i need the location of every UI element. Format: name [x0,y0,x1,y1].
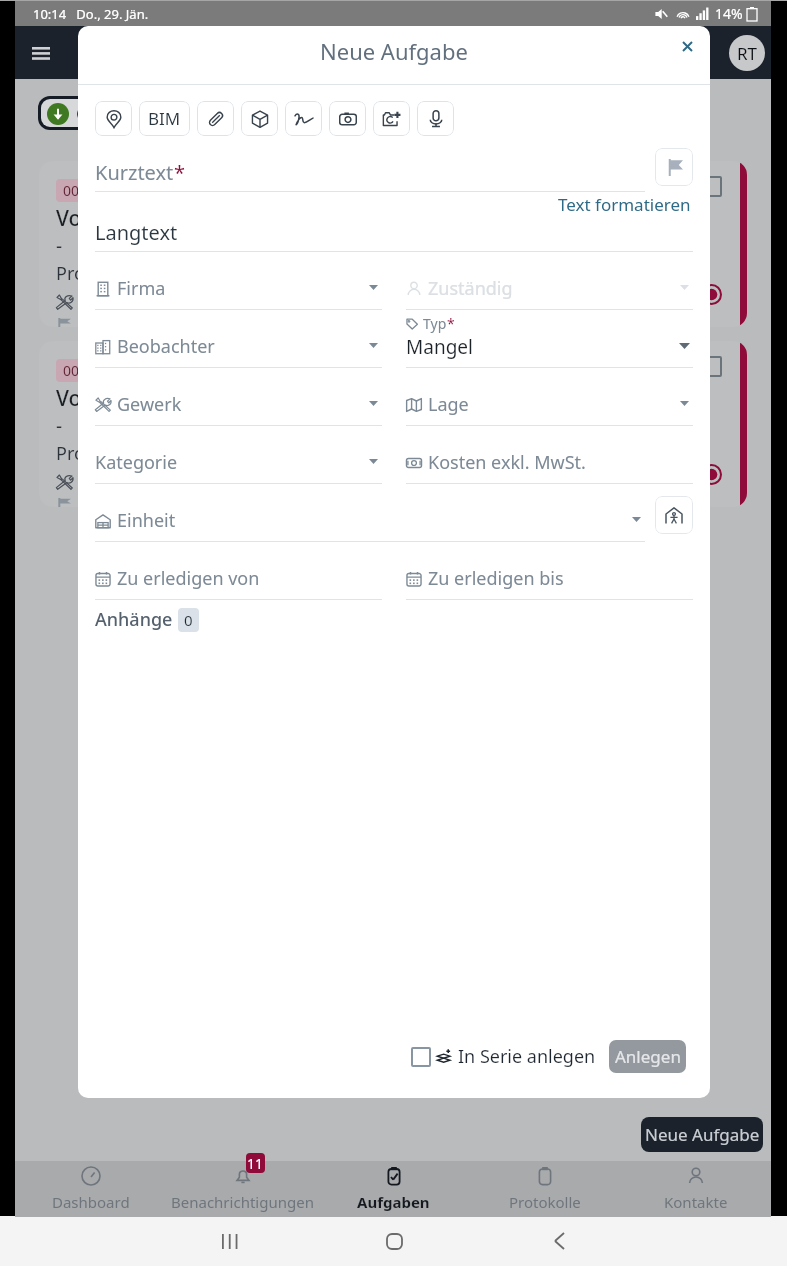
button[interactable]: RT [729,35,765,71]
staticText: Neue Aufgabe [645,1123,760,1146]
staticText: - [56,413,63,439]
staticText: Protokolle [509,1192,581,1212]
button[interactable]: Attach [197,101,234,136]
staticText: Typ [423,314,447,333]
staticText: Einheit [117,508,176,533]
staticText: Neue Aufgabe [320,36,468,66]
staticText: 11 [247,1154,264,1173]
staticText: Lage [428,392,469,417]
button[interactable]: Flag [655,148,693,186]
staticText: Dashboard [52,1192,130,1212]
button[interactable]: In Serie anlegen [411,1038,596,1075]
button[interactable]: Typ [406,310,693,368]
staticText: BIM [148,107,181,130]
staticText: - [56,233,63,259]
button[interactable]: Home [369,1216,419,1266]
button[interactable]: Close [671,30,704,63]
staticText: Vorbereitung Kickoff [56,384,264,413]
staticText: Beobachter [117,334,215,359]
staticText: - Elektro [80,291,146,314]
staticText: Projekt Nord [56,441,164,466]
button[interactable]: 3D model [241,101,278,136]
staticText: RT [737,42,758,65]
staticText: Aufgaben [357,1192,430,1212]
staticText: Vorbereitung Kickoff [56,204,264,233]
button[interactable]: Kosten exkl. MwSt. [406,426,693,484]
staticText: Text formatieren [558,193,691,216]
button[interactable]: Recents [204,1216,254,1266]
staticText: 0 [184,610,193,630]
staticText: - Elektro [80,471,146,494]
button[interactable]: Dashboard [15,1161,167,1217]
button[interactable]: Kontakte [620,1161,771,1217]
staticText: Zu erledigen von [117,566,260,591]
staticText: Mangel [406,334,473,360]
staticText: In Serie anlegen [458,1044,596,1069]
button[interactable]: Kategorie [95,426,382,484]
button[interactable]: Back [534,1216,584,1266]
staticText: Gewerk [117,392,182,417]
button[interactable]: Protokolle [469,1161,620,1217]
staticText: Benachrichtigungen [171,1192,314,1212]
button[interactable]: Camera [329,101,366,136]
staticText: * [447,314,455,333]
button[interactable]: Neue Aufgabe [641,1117,763,1152]
staticText: Kosten exkl. MwSt. [428,450,586,475]
button[interactable]: 11 [167,1161,318,1217]
button[interactable]: Menu [19,31,63,75]
staticText: Anhänge [95,607,173,632]
button[interactable]: Text formatieren [556,192,693,217]
button[interactable]: Beobachter [95,310,382,368]
staticText: 0014 [63,361,96,380]
button[interactable]: Firma [95,252,382,310]
staticText: * [174,159,186,186]
staticText: Kurztext [95,159,174,186]
staticText: Anlegen [615,1045,681,1068]
button[interactable]: Offen [41,99,335,127]
button[interactable]: Gewerk [95,368,382,426]
button[interactable]: Zu erledigen bis [406,542,693,600]
button[interactable]: 0015 [39,161,747,327]
staticText: Firma [117,276,166,301]
staticText: Offen [76,102,122,125]
staticText: 10:14 Do., 29. Jän. [33,5,149,23]
button[interactable]: Add photo [373,101,410,136]
button[interactable]: Voice [417,101,454,136]
button[interactable]: Signature [285,101,322,136]
button[interactable]: Location [95,101,132,136]
staticText: Projekt Nord [56,261,164,286]
staticText: Zuständig [428,276,513,301]
button[interactable]: Anlegen [609,1040,686,1073]
button[interactable]: Select unit [655,496,693,534]
staticText: Zu erledigen bis [428,566,564,591]
button[interactable]: Zu erledigen von [95,542,382,600]
staticText: Kontakte [664,1192,728,1212]
button[interactable]: Aufgaben [318,1161,469,1217]
staticText: 14% [715,4,743,23]
button[interactable]: Lage [406,368,693,426]
button[interactable]: Zuständig [406,252,693,310]
button[interactable]: BIM [139,101,190,136]
button[interactable]: Einheit [95,484,645,542]
staticText: Kategorie [95,450,178,475]
button[interactable]: 0014 [39,341,747,507]
staticText: Langtext [95,219,178,246]
staticText: 0015 [63,181,96,200]
